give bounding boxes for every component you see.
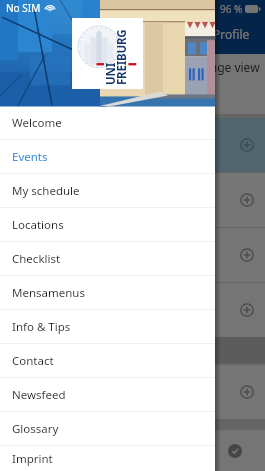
staticText: Monday, 8 October: [16, 93, 115, 108]
staticText: Checklist: [12, 251, 61, 267]
staticText: 10:00 - 12:00: [12, 402, 72, 416]
staticText: Change view: [188, 59, 260, 75]
staticText: Mensamenus: [12, 285, 85, 301]
staticText: Locations: [12, 217, 64, 233]
staticText: Haus zur Lieben Hand: [12, 304, 116, 318]
button[interactable]: Added to schedule: [228, 444, 242, 458]
button[interactable]: City Rally: [0, 365, 265, 419]
button[interactable]: Contact: [0, 344, 215, 378]
button[interactable]: Profile: [213, 26, 250, 42]
staticText: 09:00 - 10:00: [12, 155, 72, 169]
button[interactable]: Checklist: [0, 242, 215, 276]
staticText: Opening Ceremony: [12, 121, 118, 137]
staticText: Language Course: [12, 430, 107, 446]
button[interactable]: Events: [0, 140, 215, 174]
button[interactable]: Add to schedule: [240, 193, 254, 207]
staticText: Lunch in the Mensa: [12, 231, 118, 247]
staticText: Events: [12, 149, 48, 165]
staticText: Aula, KG I: [12, 139, 58, 153]
staticText: Contact: [12, 353, 54, 369]
staticText: Downtown Freiburg: [12, 386, 106, 400]
staticText: UNI: [103, 63, 119, 85]
staticText: Meeting point: KG II: [12, 194, 106, 208]
button[interactable]: Welcome: [0, 106, 215, 140]
staticText: Glossary: [12, 421, 59, 437]
button[interactable]: Language Course: [0, 430, 265, 471]
staticText: My schedule: [12, 183, 80, 199]
button[interactable]: My schedule: [0, 174, 215, 208]
staticText: 18:00 - 20:00 18: [12, 320, 86, 334]
staticText: 11:00 - 12:00: [12, 210, 72, 224]
staticText: 96 %: [220, 2, 243, 16]
button[interactable]: Glossary: [0, 412, 215, 446]
button[interactable]: Welcome Evening: [0, 283, 265, 337]
staticText: Welcome: [12, 115, 62, 131]
button[interactable]: Add to schedule: [240, 303, 254, 317]
staticText: Newsfeed: [12, 387, 66, 403]
button[interactable]: Campus tour: [0, 173, 265, 227]
staticText: FREIBURG: [114, 29, 130, 85]
staticText: Welcome Evening: [12, 286, 108, 302]
staticText: Campus tour: [12, 176, 83, 192]
staticText: 09:00 - 11:00: [12, 464, 72, 471]
staticText: No SIM: [6, 1, 41, 15]
button[interactable]: Add to schedule: [240, 385, 254, 399]
button[interactable]: Locations: [0, 208, 215, 242]
staticText: Info & Tips: [12, 319, 71, 335]
staticText: 12:00 - 13:00 18: [12, 265, 86, 279]
staticText: City Rally: [12, 368, 61, 384]
staticText: Sprachlehrinstitut: [12, 448, 96, 462]
button[interactable]: Mensamenus: [0, 276, 215, 310]
button[interactable]: Lunch in the Mensa: [0, 228, 265, 282]
button[interactable]: Imprint: [0, 446, 215, 471]
button[interactable]: Add to schedule: [240, 248, 254, 262]
staticText: Mensa Rempartstr: [12, 249, 100, 263]
button[interactable]: Add to schedule: [240, 138, 254, 152]
staticText: Imprint: [12, 451, 53, 467]
button[interactable]: Opening Ceremony: [0, 118, 265, 172]
staticText: Tuesday, 9 October: [16, 343, 115, 358]
button[interactable]: Newsfeed: [0, 378, 215, 412]
button[interactable]: Change view: [0, 54, 265, 87]
button[interactable]: Info & Tips: [0, 310, 215, 344]
